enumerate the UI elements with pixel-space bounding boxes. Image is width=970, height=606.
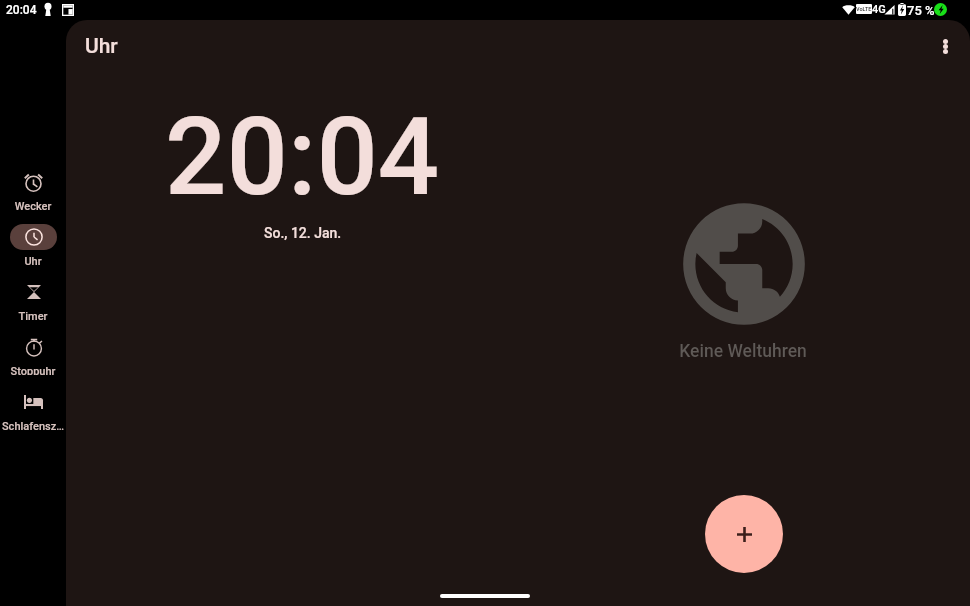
button[interactable]: Schlafensz… — [0, 375, 66, 430]
staticText: Timer — [0, 310, 66, 320]
button[interactable]: Add city — [705, 495, 783, 573]
staticText: Keine Weltuhren — [673, 341, 813, 362]
staticText: 4G — [872, 3, 886, 16]
staticText: Uhr — [85, 34, 118, 59]
staticText: Schlafensz… — [0, 420, 66, 430]
button[interactable]: More options — [921, 22, 969, 70]
staticText: VoLTE — [856, 6, 872, 12]
staticText: So., 12. Jan. — [264, 225, 342, 241]
staticText: Uhr — [0, 255, 66, 265]
staticText: 20:04 — [6, 3, 37, 17]
staticText: Wecker — [0, 200, 66, 210]
staticText: 75 % — [907, 3, 935, 18]
button[interactable]: Stoppuhr — [0, 320, 66, 375]
button[interactable]: Uhr — [0, 210, 66, 265]
button[interactable]: Timer — [0, 265, 66, 320]
button[interactable]: Wecker — [0, 155, 66, 210]
staticText: 20:04 — [165, 94, 440, 221]
staticText: Stoppuhr — [0, 365, 66, 375]
